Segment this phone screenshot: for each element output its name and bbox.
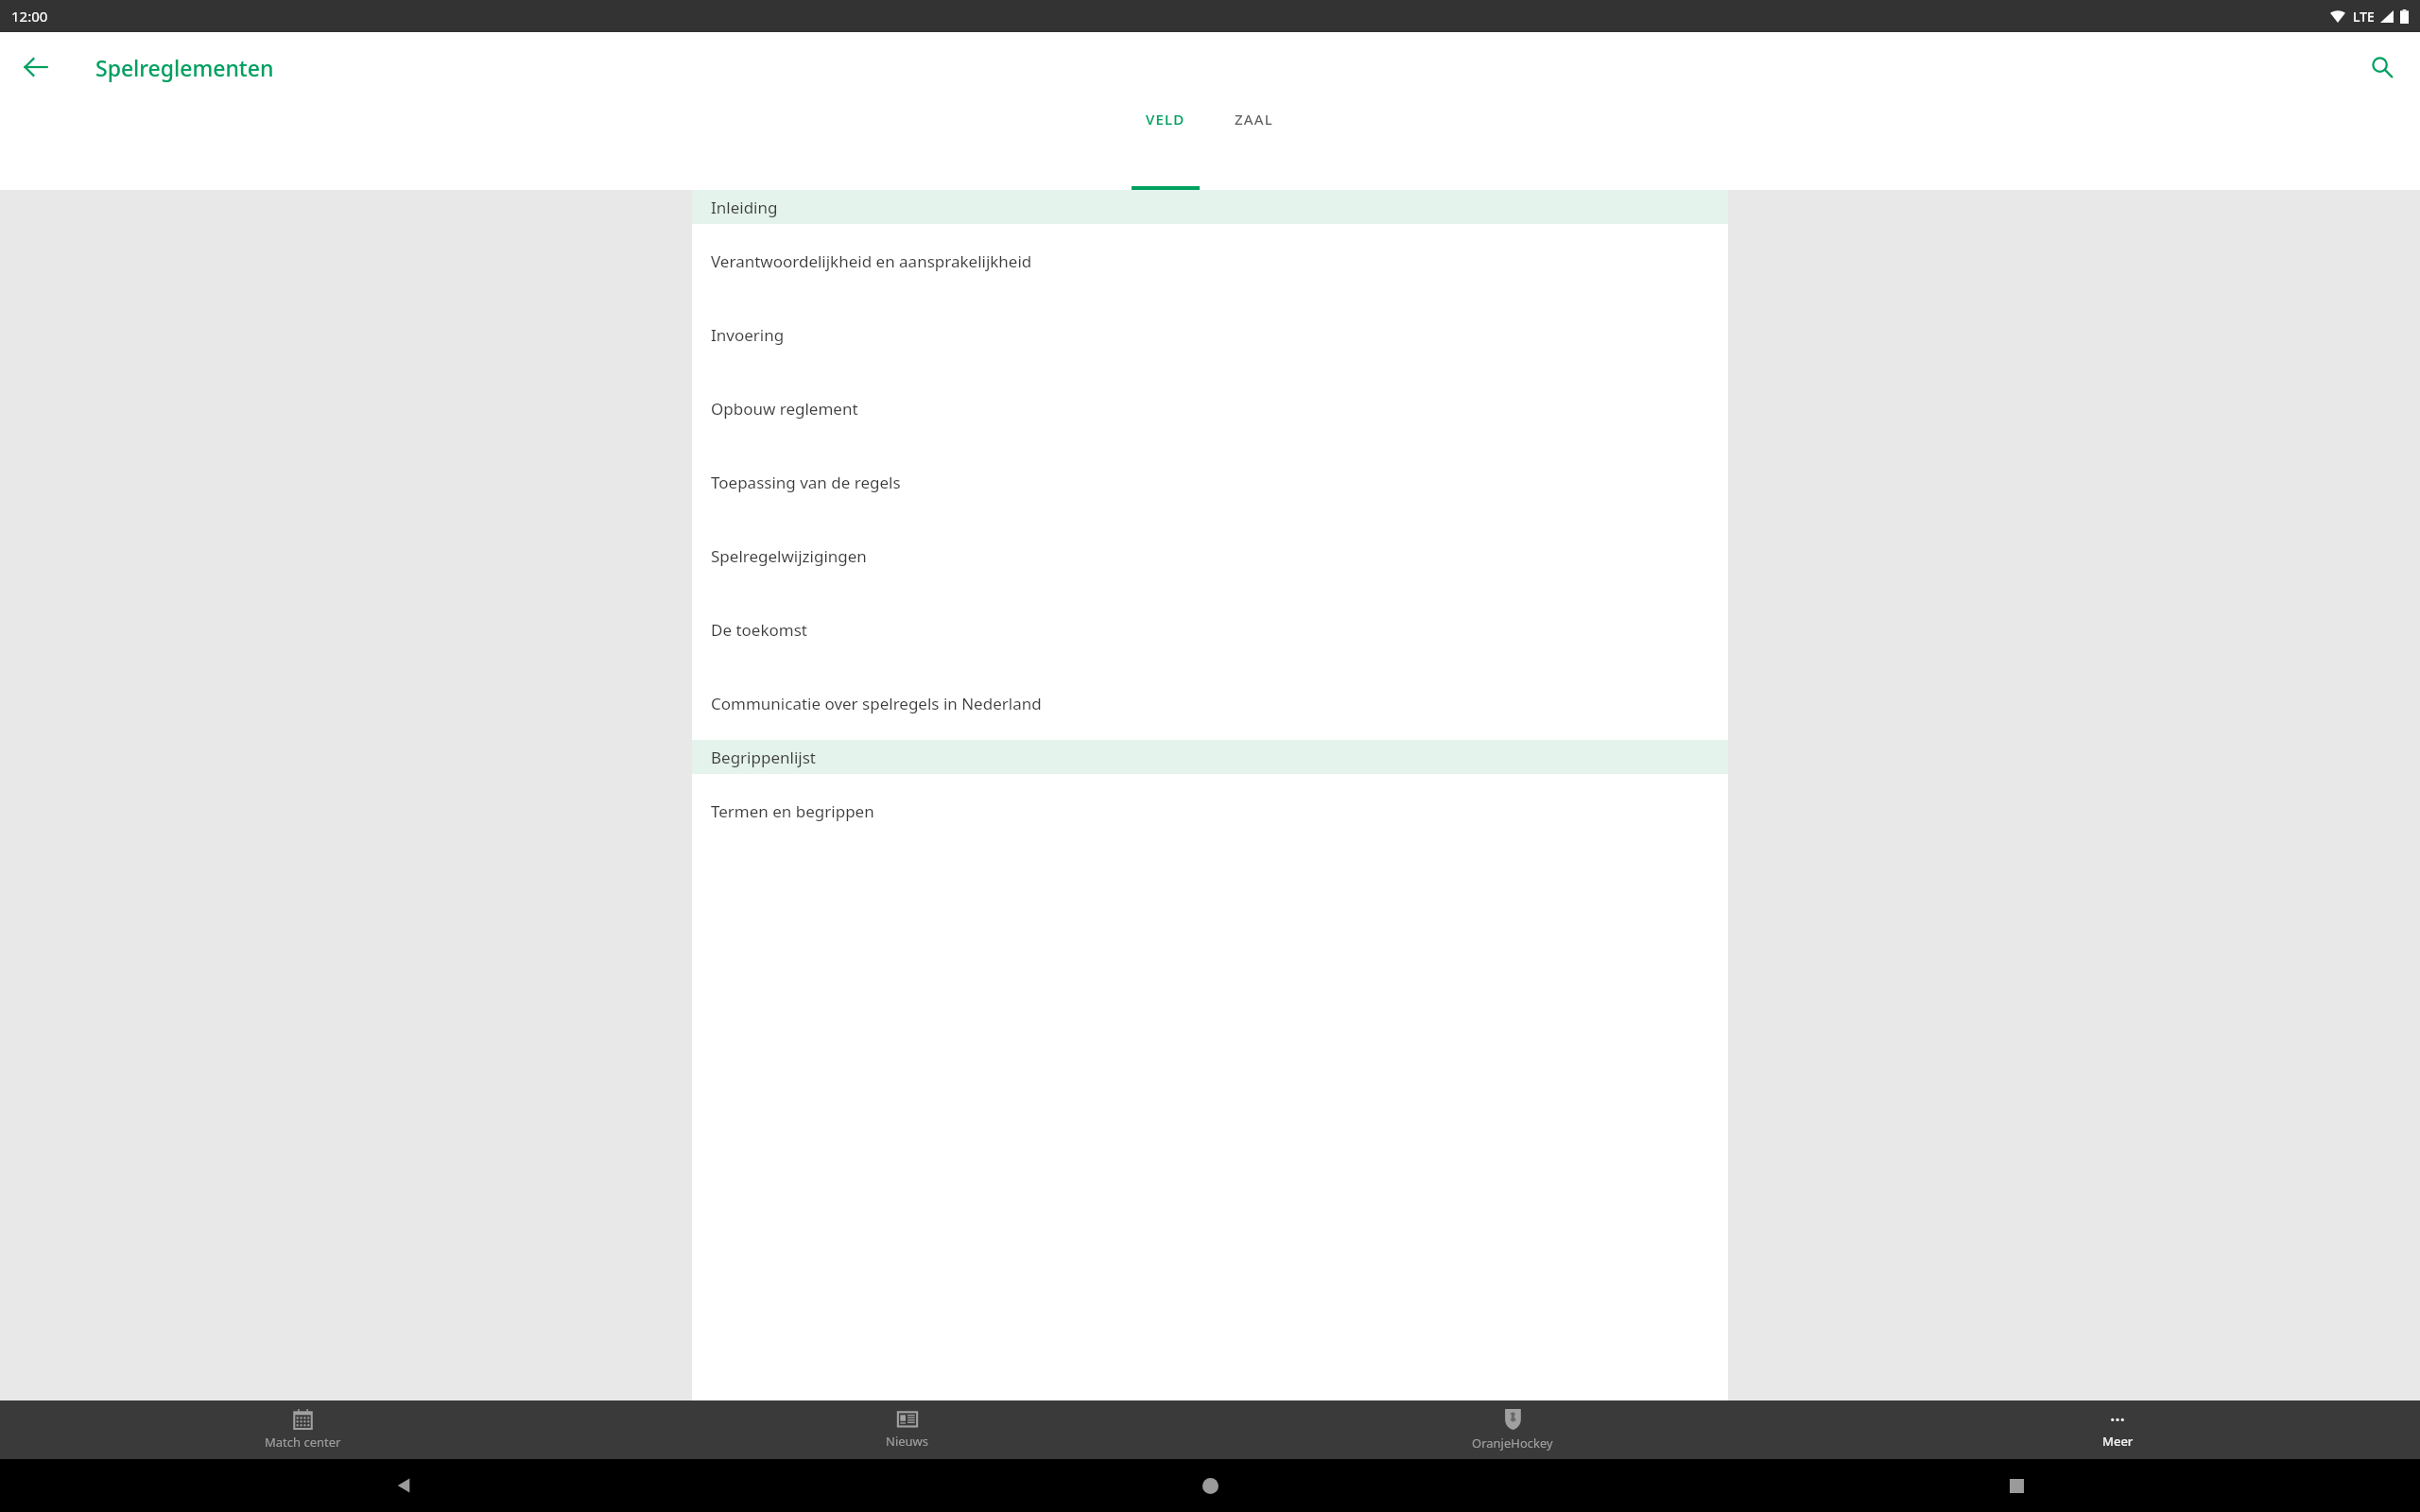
staticText: Invoering xyxy=(711,324,785,346)
button[interactable]: Back xyxy=(9,41,62,94)
staticText: Spelregelwijzigingen xyxy=(711,545,867,567)
button[interactable]: Termen en begrippen xyxy=(692,774,1728,848)
button[interactable]: Toepassing van de regels xyxy=(692,445,1728,519)
button[interactable]: Back xyxy=(0,1459,807,1512)
button[interactable]: OranjeHockey xyxy=(1210,1400,1815,1459)
button[interactable]: Inleiding xyxy=(692,190,1728,224)
button[interactable]: Recents xyxy=(1614,1459,2420,1512)
staticText: Nieuws xyxy=(886,1433,929,1450)
button[interactable]: Begrippenlijst xyxy=(692,740,1728,774)
button[interactable]: Spelregelwijzigingen xyxy=(692,519,1728,593)
staticText: OranjeHockey xyxy=(1472,1435,1553,1452)
button[interactable]: VELD xyxy=(1132,102,1200,190)
staticText: De toekomst xyxy=(711,619,807,641)
staticText: Meer xyxy=(2102,1433,2134,1450)
staticText: Begrippenlijst xyxy=(711,747,816,768)
staticText: Communicatie over spelregels in Nederlan… xyxy=(711,693,1042,714)
button[interactable]: Communicatie over spelregels in Nederlan… xyxy=(692,666,1728,740)
staticText: VELD xyxy=(1146,110,1185,129)
button[interactable]: Nieuws xyxy=(605,1400,1210,1459)
staticText: Termen en begrippen xyxy=(711,800,874,822)
button[interactable]: Invoering xyxy=(692,298,1728,371)
staticText: Opbouw reglement xyxy=(711,398,858,420)
button[interactable]: Meer xyxy=(1815,1400,2420,1459)
button[interactable]: De toekomst xyxy=(692,593,1728,666)
staticText: 12:00 xyxy=(11,7,48,26)
staticText: Match center xyxy=(265,1434,341,1451)
staticText: Inleiding xyxy=(711,197,778,218)
staticText: LTE xyxy=(2353,8,2375,26)
staticText: ZAAL xyxy=(1235,110,1274,129)
staticText: Spelreglementen xyxy=(95,53,274,82)
staticText: Verantwoordelijkheid en aansprakelijkhei… xyxy=(711,250,1032,272)
button[interactable]: Home xyxy=(807,1459,1614,1512)
button[interactable]: Match center xyxy=(0,1400,605,1459)
button[interactable]: Opbouw reglement xyxy=(692,371,1728,445)
button[interactable]: ZAAL xyxy=(1220,102,1288,190)
staticText: Toepassing van de regels xyxy=(711,472,901,493)
button[interactable]: Search xyxy=(2356,41,2409,94)
button[interactable]: Verantwoordelijkheid en aansprakelijkhei… xyxy=(692,224,1728,298)
